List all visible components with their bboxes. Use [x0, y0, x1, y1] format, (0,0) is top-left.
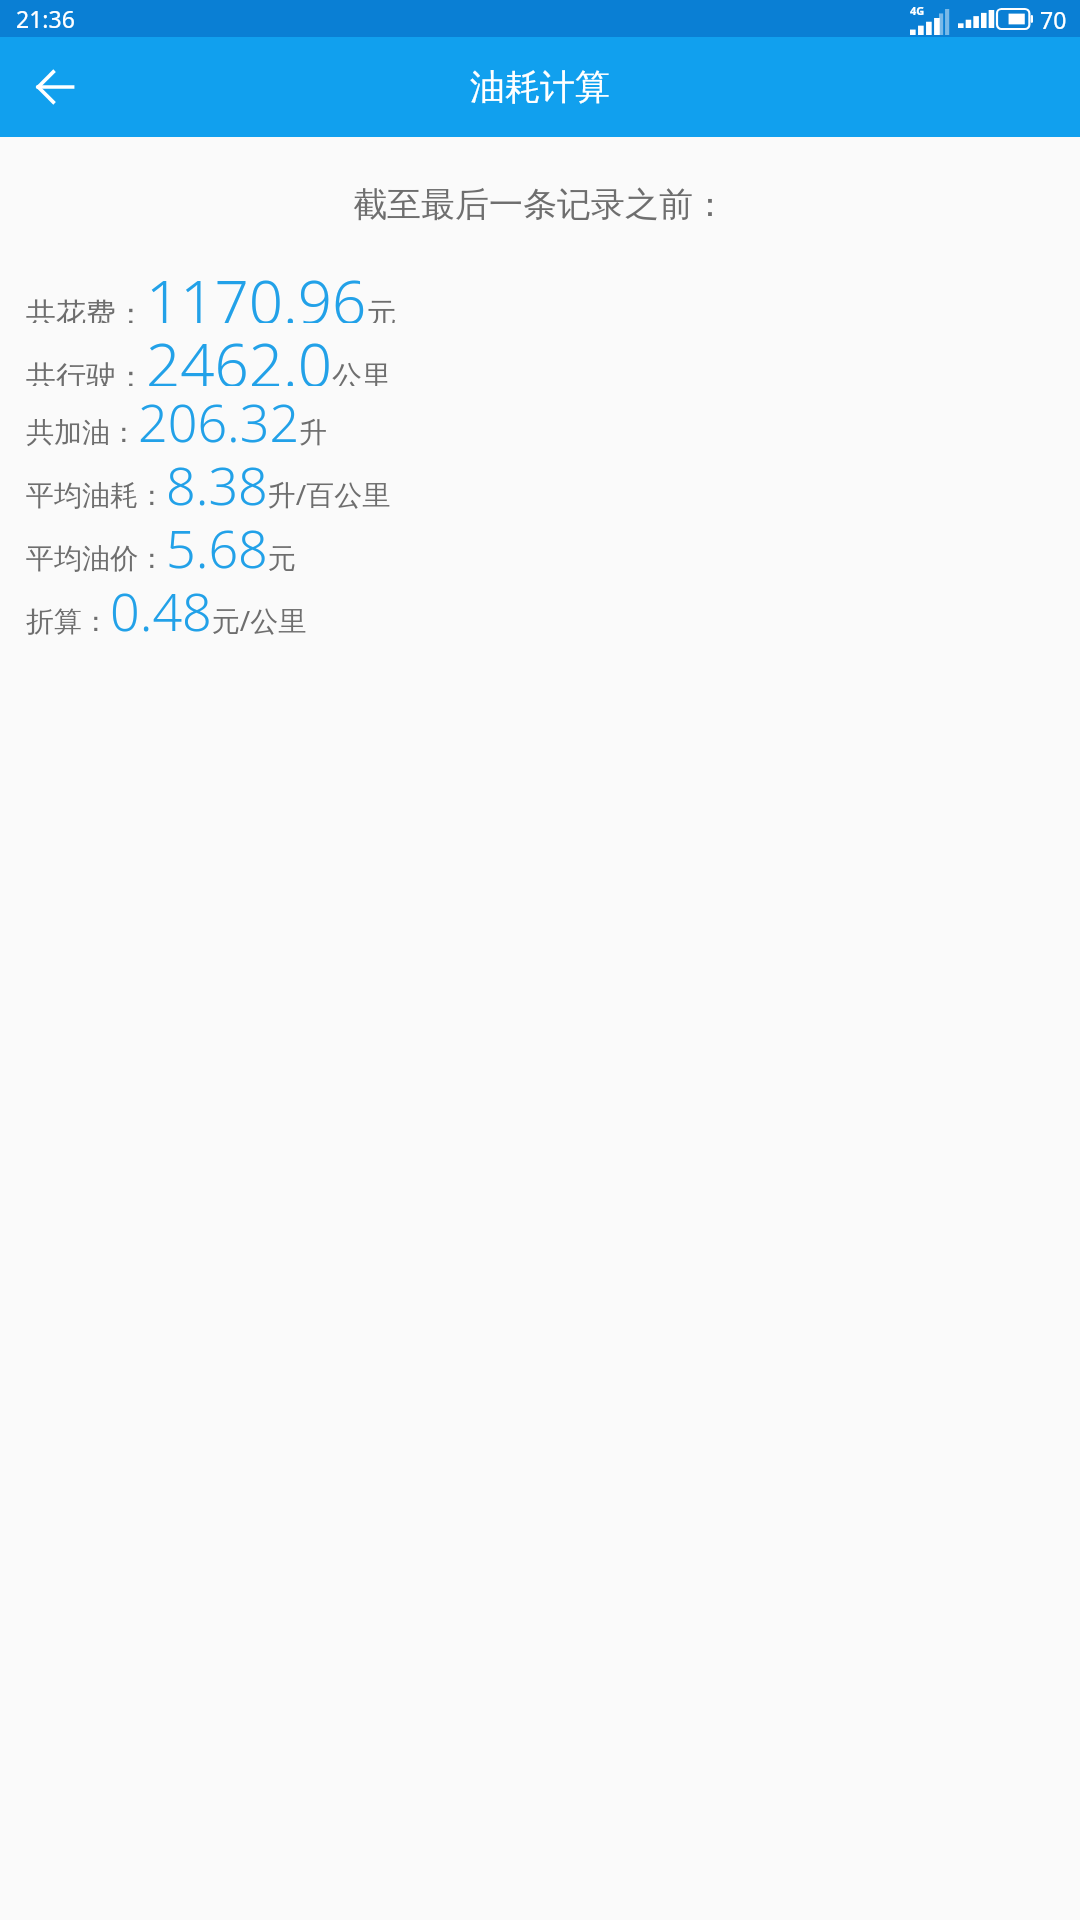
- staticText: 4G: [910, 3, 925, 18]
- staticText: 共行驶：2462.0公里: [26, 323, 392, 386]
- staticText: 70: [1040, 4, 1067, 35]
- staticText: 共加油：206.32升: [26, 386, 328, 449]
- staticText: 平均油耗：8.38升/百公里: [26, 449, 391, 512]
- staticText: 平均油价：5.68元: [26, 512, 296, 575]
- staticText: 截至最后一条记录之前：: [353, 183, 727, 226]
- staticText: 油耗计算: [470, 65, 610, 109]
- staticText: 折算：0.48元/公里: [26, 575, 307, 638]
- staticText: 共花费：1170.96元: [26, 260, 397, 323]
- button[interactable]: Back: [22, 54, 88, 120]
- staticText: 21:36: [16, 3, 75, 34]
